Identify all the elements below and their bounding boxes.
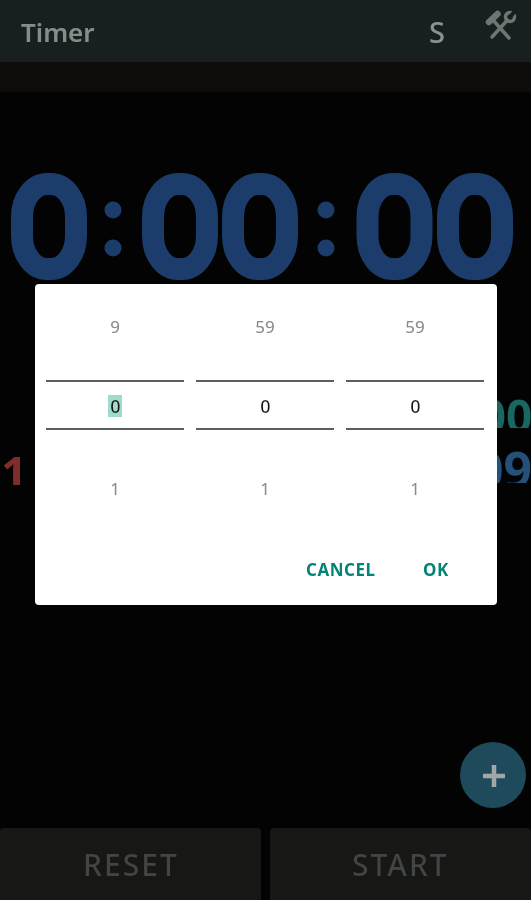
staticText: 09 bbox=[475, 435, 531, 483]
staticText: S bbox=[429, 12, 445, 51]
staticText: 0 bbox=[110, 394, 121, 418]
staticText: 1 bbox=[260, 477, 270, 500]
staticText: 0:00:00 bbox=[375, 384, 531, 428]
button[interactable]: OK bbox=[407, 547, 465, 591]
staticText: START bbox=[352, 844, 449, 885]
button[interactable] bbox=[460, 742, 526, 808]
button[interactable] bbox=[484, 9, 518, 43]
staticText: 59 bbox=[255, 315, 275, 338]
staticText: 9 bbox=[110, 315, 120, 338]
staticText: Timer bbox=[21, 14, 95, 49]
button[interactable]: S bbox=[412, 0, 462, 62]
button[interactable]: START bbox=[270, 828, 531, 900]
button[interactable]: CANCEL bbox=[301, 547, 381, 591]
staticText: 1 bbox=[1, 441, 28, 485]
button[interactable]: RESET bbox=[0, 828, 261, 900]
staticText: 59 bbox=[405, 315, 425, 338]
staticText: 0 bbox=[260, 394, 271, 418]
staticText: 1 bbox=[110, 477, 120, 500]
staticText: CANCEL bbox=[306, 558, 376, 581]
staticText: RESET bbox=[83, 844, 179, 885]
staticText: 0 bbox=[410, 394, 421, 418]
staticText: OK bbox=[423, 558, 449, 581]
staticText: 1 bbox=[410, 477, 420, 500]
